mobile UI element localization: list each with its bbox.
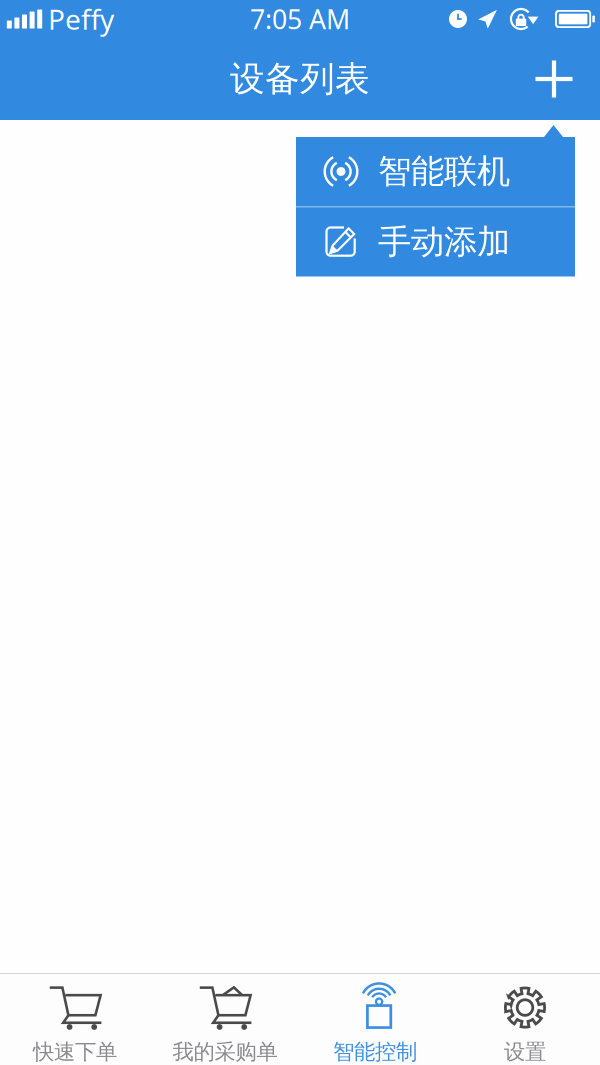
button[interactable]: 手动添加 bbox=[296, 207, 575, 276]
staticText: 手动添加 bbox=[378, 221, 510, 262]
button[interactable]: 快速下单 bbox=[0, 973, 150, 1065]
button[interactable]: 我的采购单 bbox=[150, 973, 300, 1065]
staticText: 7:05 AM bbox=[250, 1, 350, 37]
staticText: 设置 bbox=[504, 1039, 546, 1065]
button[interactable]: 智能控制 bbox=[300, 973, 450, 1065]
staticText: Peffy bbox=[48, 0, 114, 38]
staticText: 设备列表 bbox=[230, 58, 370, 100]
button[interactable]: 智能联机 bbox=[296, 137, 575, 206]
button[interactable]: Add device bbox=[526, 43, 582, 115]
staticText: 快速下单 bbox=[33, 1039, 117, 1065]
staticText: 智能控制 bbox=[333, 1039, 417, 1065]
staticText: 智能联机 bbox=[378, 151, 510, 192]
button[interactable]: 设置 bbox=[450, 973, 600, 1065]
staticText: 我的采购单 bbox=[172, 1039, 277, 1065]
